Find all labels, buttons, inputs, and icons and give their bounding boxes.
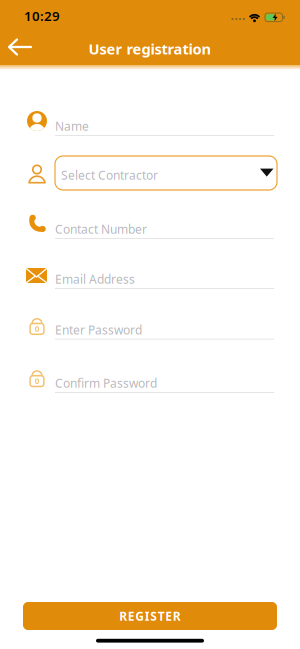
button[interactable]: Name (26, 111, 274, 136)
button[interactable]: Email Address (26, 268, 274, 289)
button[interactable]: Back (9, 39, 31, 55)
staticText: Name (55, 118, 89, 134)
staticText: Enter Password (55, 322, 142, 338)
staticText: Select Contractor (61, 167, 158, 183)
button[interactable]: Contact Number (26, 216, 274, 239)
button[interactable]: Confirm Password (26, 367, 274, 393)
staticText: 10:29 (24, 7, 60, 25)
staticText: Confirm Password (55, 375, 157, 391)
staticText: Contact Number (55, 221, 147, 237)
button[interactable]: REGISTER (23, 602, 277, 630)
staticText: Email Address (55, 271, 135, 287)
button[interactable]: Select Contractor (55, 156, 277, 190)
staticText: REGISTER (119, 608, 181, 624)
staticText: User registration (88, 39, 211, 58)
button[interactable]: Enter Password (26, 315, 274, 340)
